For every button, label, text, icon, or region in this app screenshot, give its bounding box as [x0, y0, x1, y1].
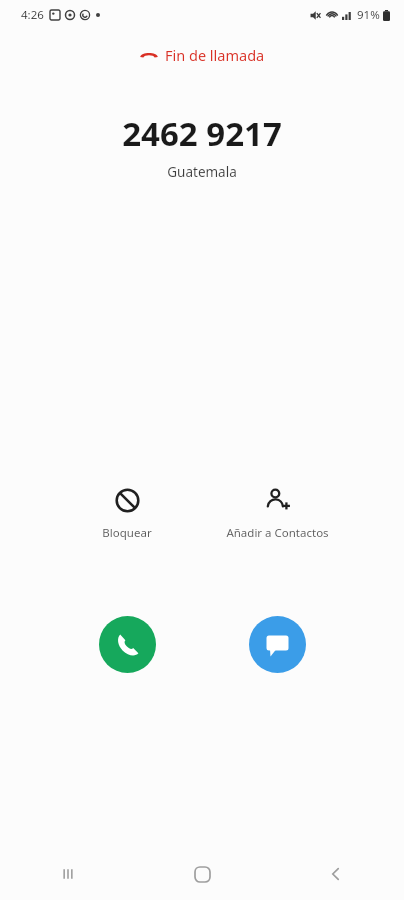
button[interactable]: Bloquear	[52, 483, 202, 545]
button[interactable]: Recents	[1, 848, 135, 900]
button[interactable]: Call	[99, 616, 156, 673]
button[interactable]: Back	[269, 848, 403, 900]
staticText: Añadir a Contactos	[226, 525, 329, 541]
button[interactable]: Message	[249, 616, 306, 673]
staticText: Guatemala	[167, 163, 237, 181]
staticText: 4:26	[21, 7, 44, 23]
staticText: Fin de llamada	[165, 45, 265, 65]
staticText: 91%	[357, 7, 380, 23]
button[interactable]: Añadir a Contactos	[202, 483, 352, 545]
staticText: Bloquear	[102, 525, 152, 541]
button[interactable]: Home	[135, 848, 269, 900]
staticText: 2462 9217	[122, 111, 282, 156]
